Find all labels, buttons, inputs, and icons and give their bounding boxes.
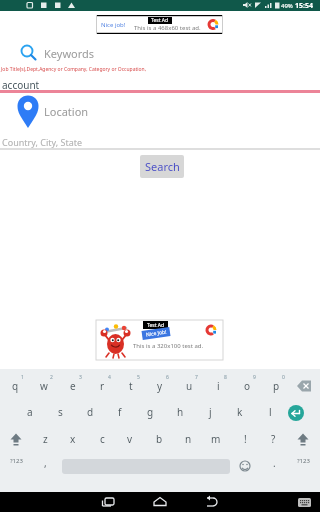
staticText: This is a 320x100 test ad. <box>133 342 204 350</box>
staticText: . <box>273 456 276 470</box>
staticText: Keywords <box>44 46 95 61</box>
staticText: Test Ad <box>147 322 165 329</box>
staticText: Nice job! <box>101 21 126 29</box>
staticText: b <box>156 432 163 446</box>
button[interactable] <box>204 495 220 509</box>
button[interactable]: g <box>138 402 162 422</box>
button[interactable]: , <box>33 453 57 473</box>
staticText: Nice Job! <box>146 328 167 338</box>
staticText: h <box>177 405 184 419</box>
staticText: 5 <box>137 374 140 381</box>
button[interactable]: l <box>258 402 282 422</box>
staticText: o <box>244 379 251 393</box>
staticText: t <box>129 379 133 393</box>
staticText: z <box>43 432 48 446</box>
staticText: r <box>100 379 105 393</box>
staticText: l <box>269 405 272 419</box>
staticText: v <box>127 432 133 446</box>
button[interactable] <box>293 377 315 395</box>
button[interactable]: d <box>78 402 102 422</box>
staticText: account <box>2 78 40 92</box>
staticText: 3 <box>79 374 82 381</box>
button[interactable]: . <box>262 453 286 473</box>
staticText: , <box>44 456 47 470</box>
button[interactable]: k <box>228 402 252 422</box>
staticText: 7 <box>195 374 198 381</box>
staticText: 49% <box>281 2 293 10</box>
staticText: Country, City, State <box>2 136 83 148</box>
button[interactable] <box>288 405 304 421</box>
staticText: 4 <box>108 374 111 381</box>
staticText: i <box>217 379 220 393</box>
staticText: m <box>211 432 221 446</box>
staticText: Job Title(s),Dept,Agency or Company, Cat… <box>1 66 147 73</box>
staticText: 15:54 <box>295 1 313 11</box>
button[interactable] <box>298 498 312 508</box>
staticText: This is a 468x60 test ad. <box>134 24 201 32</box>
button[interactable]: e <box>61 376 85 396</box>
button[interactable]: a <box>18 402 42 422</box>
staticText: k <box>237 405 243 419</box>
button[interactable]: c <box>90 429 114 449</box>
button[interactable]: u <box>177 376 201 396</box>
button[interactable]: ? <box>261 429 285 449</box>
button[interactable]: Test Ad <box>96 320 223 360</box>
button[interactable]: n <box>176 429 200 449</box>
staticText: s <box>58 405 63 419</box>
staticText: f <box>118 405 122 419</box>
button[interactable] <box>294 431 312 447</box>
staticText: d <box>87 405 94 419</box>
button[interactable]: m <box>204 429 228 449</box>
staticText: Location <box>44 104 89 119</box>
button[interactable]: ! <box>233 429 257 449</box>
staticText: 2 <box>50 374 53 381</box>
staticText: e <box>70 379 76 393</box>
button[interactable]: i <box>206 376 230 396</box>
button[interactable]: f <box>108 402 132 422</box>
button[interactable]: v <box>118 429 142 449</box>
button[interactable]: o <box>235 376 259 396</box>
button[interactable]: ?123 <box>291 451 315 471</box>
button[interactable]: t <box>119 376 143 396</box>
staticText: ? <box>271 432 276 446</box>
staticText: ! <box>244 432 247 446</box>
staticText: Test Ad <box>151 17 169 24</box>
staticText: ?123 <box>297 457 310 465</box>
staticText: x <box>70 432 76 446</box>
staticText: 6 <box>166 374 169 381</box>
staticText: j <box>209 405 212 419</box>
button[interactable]: j <box>198 402 222 422</box>
button[interactable]: s <box>48 402 72 422</box>
button[interactable]: q <box>3 376 27 396</box>
button[interactable] <box>100 495 116 509</box>
staticText: n <box>185 432 192 446</box>
staticText: g <box>147 405 154 419</box>
button[interactable]: y <box>148 376 172 396</box>
staticText: q <box>12 379 19 393</box>
button[interactable] <box>7 431 25 447</box>
staticText: ?123 <box>10 457 23 465</box>
button[interactable]: h <box>168 402 192 422</box>
button[interactable] <box>152 495 168 509</box>
staticText: y <box>157 379 163 393</box>
button[interactable]: b <box>147 429 171 449</box>
button[interactable]: z <box>33 429 57 449</box>
button[interactable]: Nice job! <box>96 15 223 34</box>
staticText: u <box>186 379 193 393</box>
button[interactable]: Search <box>140 155 184 178</box>
button[interactable]: p <box>264 376 288 396</box>
staticText: w <box>40 379 48 393</box>
button[interactable]: w <box>32 376 56 396</box>
staticText: 0 <box>282 374 285 381</box>
staticText: c <box>100 432 105 446</box>
staticText: 9 <box>253 374 256 381</box>
staticText: Search <box>145 159 180 174</box>
button[interactable]: ?123 <box>4 451 28 471</box>
staticText: a <box>27 405 33 419</box>
staticText: 8 <box>224 374 227 381</box>
button[interactable]: x <box>61 429 85 449</box>
button[interactable]: r <box>90 376 114 396</box>
button[interactable] <box>238 459 252 473</box>
staticText: p <box>273 379 280 393</box>
